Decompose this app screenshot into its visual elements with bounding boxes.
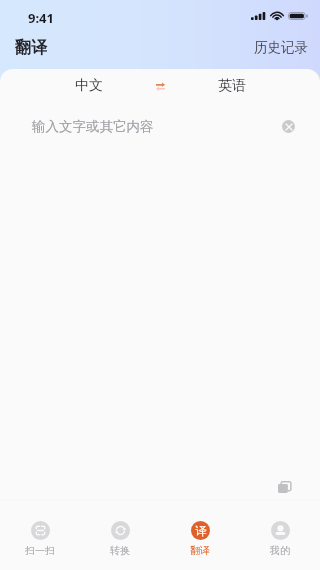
button[interactable]: 英语 — [203, 73, 260, 99]
staticText: 扫一扫 — [25, 544, 55, 557]
staticText: 转换 — [110, 544, 130, 557]
button[interactable]: Copy translation — [274, 476, 295, 497]
button[interactable]: 中文 — [60, 73, 117, 99]
staticText: 9:41 — [28, 9, 54, 27]
staticText: 中文 — [75, 77, 103, 95]
button[interactable]: Clear text — [282, 120, 295, 133]
button[interactable]: 译 — [160, 500, 240, 570]
button[interactable]: 我的 — [240, 500, 320, 570]
button[interactable]: 转换 — [80, 500, 160, 570]
button[interactable]: Swap languages — [147, 73, 173, 99]
staticText: 翻译 — [190, 544, 210, 557]
staticText: 翻译 — [15, 38, 47, 58]
staticText: 历史记录 — [254, 39, 308, 56]
staticText: 译 — [195, 523, 207, 538]
button[interactable]: 扫一扫 — [0, 500, 80, 570]
button[interactable]: 历史记录 — [254, 39, 308, 56]
staticText: 我的 — [270, 544, 290, 557]
staticText: 英语 — [218, 77, 246, 95]
staticText: 输入文字或其它内容 — [32, 118, 154, 135]
